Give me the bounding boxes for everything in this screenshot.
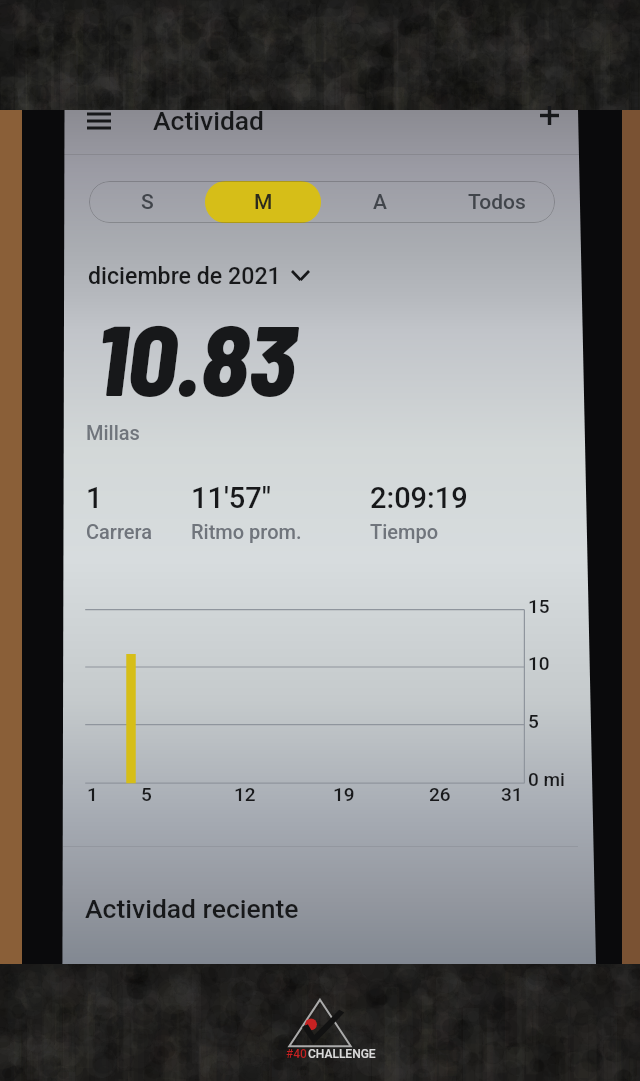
staticText: #40 (286, 1047, 307, 1061)
staticText: 1 (86, 481, 103, 515)
button[interactable]: Add activity (529, 95, 569, 135)
staticText: 5 (528, 710, 539, 732)
staticText: 19 (333, 783, 355, 805)
button[interactable]: Menu (78, 99, 120, 141)
staticText: Millas (86, 421, 140, 444)
staticText: 5 (141, 783, 152, 805)
button[interactable]: Todos (438, 181, 555, 223)
button[interactable]: diciembre de 2021 (82, 262, 310, 289)
staticText: 1 (87, 783, 98, 805)
button[interactable]: 11'57" (191, 481, 302, 543)
staticText: S (141, 190, 154, 215)
staticText: 2:09:19 (370, 481, 468, 515)
staticText: Actividad (153, 105, 265, 136)
staticText: Carrera (86, 520, 153, 543)
button[interactable]: M (205, 181, 321, 223)
staticText: CHALLENGE (308, 1047, 376, 1061)
staticText: 31 (501, 783, 523, 805)
staticText: 10 (528, 652, 550, 674)
staticText: Actividad reciente (85, 893, 299, 924)
staticText: 0 mi (528, 768, 565, 790)
staticText: M (254, 190, 273, 215)
staticText: 26 (429, 783, 451, 805)
staticText: Ritmo prom. (191, 520, 302, 543)
staticText: A (373, 190, 387, 215)
staticText: 10.83 (96, 297, 296, 416)
staticText: Todos (468, 190, 526, 215)
staticText: 11'57" (191, 481, 272, 515)
staticText: Tiempo (370, 520, 439, 543)
button[interactable]: A (321, 181, 438, 223)
button[interactable]: S (89, 181, 205, 223)
staticText: 15 (528, 595, 550, 617)
button[interactable]: 1 (86, 481, 153, 543)
staticText: 12 (234, 783, 256, 805)
staticText: diciembre de 2021 (88, 262, 281, 289)
button[interactable]: 2:09:19 (370, 481, 468, 543)
